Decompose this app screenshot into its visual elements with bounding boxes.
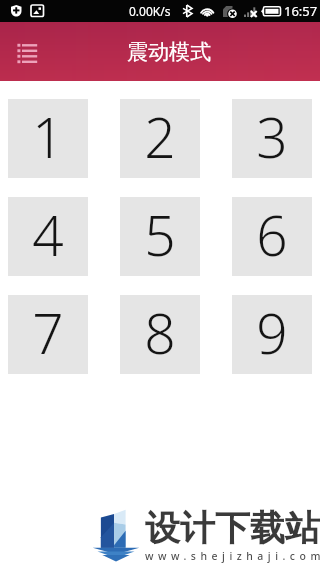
- staticText: 7: [32, 295, 64, 370]
- staticText: 4: [32, 197, 64, 272]
- button[interactable]: 7: [8, 295, 88, 374]
- staticText: 9: [256, 295, 288, 370]
- staticText: 0.00K/s: [129, 3, 171, 19]
- staticText: 设计下载站: [145, 506, 320, 550]
- button[interactable]: 2: [120, 99, 200, 178]
- staticText: 2: [144, 99, 176, 174]
- staticText: 1: [32, 99, 64, 174]
- button[interactable]: 9: [232, 295, 312, 374]
- staticText: www.shejizhaji.com: [145, 549, 320, 563]
- staticText: 5: [144, 197, 176, 272]
- button[interactable]: 5: [120, 197, 200, 276]
- button[interactable]: 6: [232, 197, 312, 276]
- staticText: 6: [256, 197, 288, 272]
- button[interactable]: 1: [8, 99, 88, 178]
- button[interactable]: 3: [232, 99, 312, 178]
- staticText: 8: [144, 295, 176, 370]
- button[interactable]: 4: [8, 197, 88, 276]
- staticText: 3: [256, 99, 288, 174]
- button[interactable]: Menu: [11, 37, 41, 67]
- staticText: 震动模式: [127, 39, 211, 65]
- staticText: 16:57: [284, 2, 318, 20]
- button[interactable]: 8: [120, 295, 200, 374]
